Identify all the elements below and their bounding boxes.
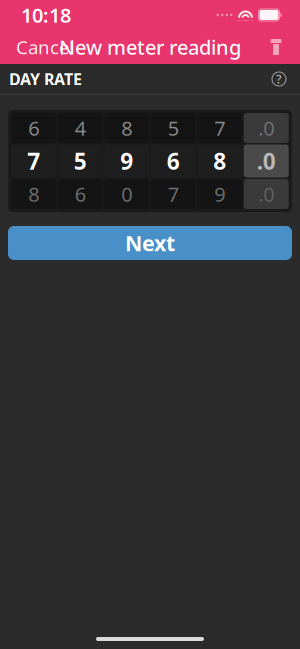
- button[interactable]: Help: [264, 64, 294, 94]
- staticText: 4: [75, 115, 86, 141]
- staticText: 6: [167, 146, 180, 176]
- staticText: New meter reading: [59, 34, 241, 60]
- staticText: 6: [28, 115, 39, 141]
- staticText: Cancel: [16, 35, 75, 59]
- button[interactable]: Cancel: [0, 30, 91, 64]
- staticText: .0: [258, 115, 274, 141]
- staticText: 8: [213, 146, 226, 176]
- staticText: DAY RATE: [9, 68, 82, 90]
- staticText: 9: [120, 146, 133, 176]
- staticText: .0: [258, 181, 274, 207]
- button[interactable]: 4: [58, 113, 103, 209]
- button[interactable]: 8: [104, 113, 149, 209]
- button[interactable]: 5: [151, 113, 196, 209]
- button[interactable]: .0: [244, 113, 289, 209]
- staticText: 9: [214, 181, 225, 207]
- staticText: 7: [214, 115, 225, 141]
- button[interactable]: Torch: [252, 30, 300, 64]
- button[interactable]: 7: [197, 113, 242, 209]
- staticText: 6: [75, 181, 86, 207]
- staticText: Next: [125, 229, 175, 257]
- button[interactable]: 6: [11, 113, 56, 209]
- staticText: 0: [121, 181, 132, 207]
- staticText: 8: [28, 181, 39, 207]
- staticText: .0: [257, 146, 276, 176]
- staticText: 5: [74, 146, 87, 176]
- staticText: 5: [168, 115, 179, 141]
- staticText: 7: [168, 181, 179, 207]
- staticText: 8: [121, 115, 132, 141]
- staticText: 7: [27, 146, 40, 176]
- button[interactable]: Next: [8, 226, 292, 260]
- staticText: ?: [276, 71, 282, 87]
- staticText: 10:18: [21, 2, 71, 28]
